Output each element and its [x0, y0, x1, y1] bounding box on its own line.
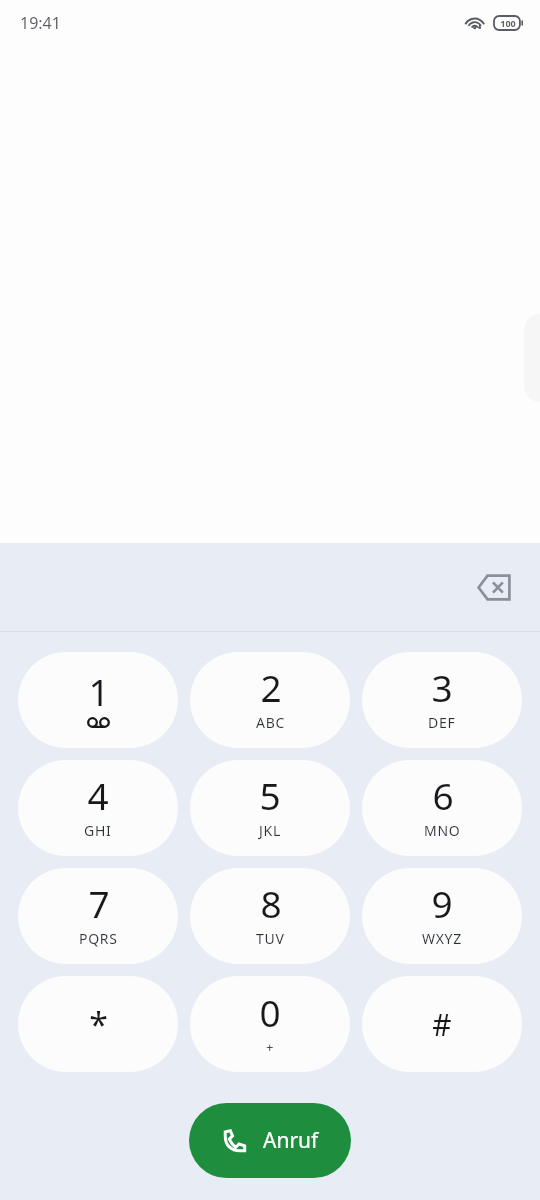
button[interactable]: Anruf [189, 1103, 351, 1178]
staticText: 3 [431, 662, 453, 712]
button[interactable]: 0 [190, 976, 350, 1072]
button[interactable]: 5 [190, 760, 350, 856]
staticText: GHI [84, 821, 112, 840]
staticText: 2 [260, 662, 282, 712]
staticText: Anruf [263, 1126, 319, 1155]
staticText: 1 [88, 666, 110, 716]
staticText: 5 [259, 770, 281, 820]
staticText: DEF [428, 713, 456, 732]
staticText: * [89, 1001, 108, 1047]
staticText: MNO [424, 821, 461, 840]
staticText: 0 [259, 987, 281, 1037]
button[interactable]: # [362, 976, 522, 1072]
button[interactable]: * [18, 976, 178, 1072]
button[interactable]: 2 [190, 652, 350, 748]
button[interactable]: 1 [18, 652, 178, 748]
button[interactable]: 7 [18, 868, 178, 964]
staticText: WXYZ [422, 929, 462, 948]
staticText: ABC [256, 713, 285, 732]
button[interactable]: 3 [362, 652, 522, 748]
button[interactable]: 4 [18, 760, 178, 856]
staticText: PQRS [79, 929, 118, 948]
staticText: 19:41 [20, 12, 61, 34]
staticText: 100 [500, 17, 516, 29]
button[interactable]: 6 [362, 760, 522, 856]
staticText: JKL [259, 821, 281, 840]
staticText: 9 [431, 878, 453, 928]
staticText: # [432, 1004, 452, 1045]
staticText: TUV [256, 929, 285, 948]
staticText: 6 [432, 770, 454, 820]
button[interactable]: 8 [190, 868, 350, 964]
staticText: 8 [260, 878, 282, 928]
staticText: + [266, 1038, 274, 1056]
staticText: 7 [88, 878, 110, 928]
staticText: 4 [87, 770, 109, 820]
button[interactable]: 9 [362, 868, 522, 964]
button[interactable]: Backspace [466, 559, 522, 615]
